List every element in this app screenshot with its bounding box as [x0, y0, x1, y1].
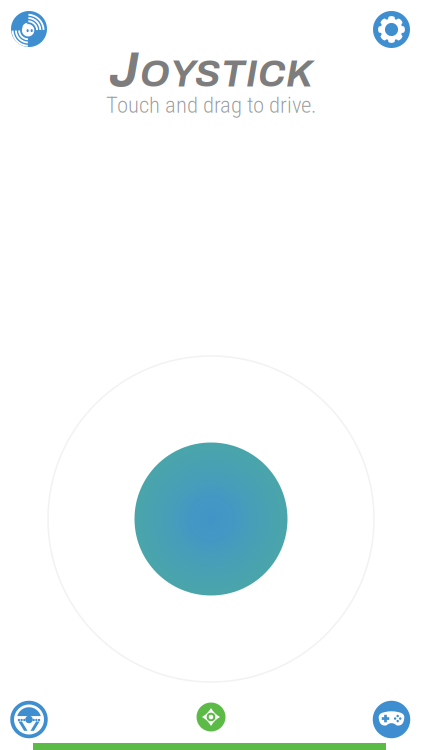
staticText: JOYSTICK — [109, 44, 313, 96]
button[interactable]: Games — [373, 701, 410, 738]
button[interactable]: Connect robot — [11, 11, 47, 47]
button[interactable]: Calibrate — [196, 702, 225, 731]
button[interactable]: Drive — [10, 701, 48, 738]
button[interactable]: Settings — [373, 11, 410, 48]
staticText: Touch and drag to drive. — [106, 92, 316, 118]
